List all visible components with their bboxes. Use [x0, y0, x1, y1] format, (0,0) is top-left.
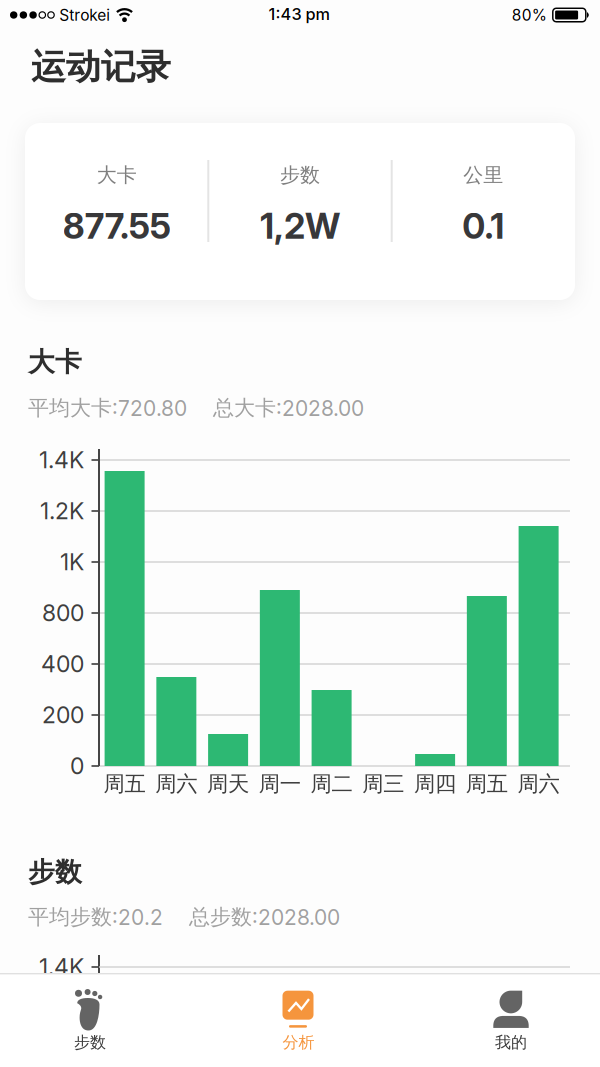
- staticText: 1,2W: [260, 205, 340, 247]
- staticText: 800: [42, 599, 84, 627]
- button[interactable]: 步数: [5, 975, 175, 1067]
- staticText: Strokei: [59, 6, 110, 24]
- staticText: 周四: [414, 771, 456, 797]
- staticText: 周五: [104, 771, 146, 797]
- staticText: 分析: [283, 1033, 315, 1052]
- staticText: 我的: [495, 1033, 527, 1052]
- staticText: 步数: [74, 1033, 106, 1052]
- staticText: 周天: [207, 771, 249, 797]
- staticText: 步数: [280, 163, 320, 187]
- staticText: 400: [41, 650, 84, 678]
- staticText: 1K: [60, 548, 84, 576]
- staticText: 平均步数:20.2: [28, 904, 163, 930]
- staticText: 大卡: [97, 163, 137, 187]
- staticText: 大卡: [28, 346, 82, 378]
- staticText: 总大卡:2028.00: [213, 395, 364, 421]
- staticText: 0.1: [462, 205, 504, 247]
- button[interactable]: 我的: [426, 975, 596, 1067]
- staticText: 周六: [518, 771, 560, 797]
- button[interactable]: 分析: [214, 975, 384, 1067]
- staticText: 200: [42, 701, 84, 729]
- staticText: 1.4K: [39, 953, 84, 981]
- staticText: 1:43 pm: [268, 4, 329, 24]
- staticText: 周五: [466, 771, 508, 797]
- staticText: 0: [70, 752, 84, 780]
- staticText: 1.2K: [40, 497, 84, 525]
- staticText: 877.55: [63, 205, 171, 247]
- staticText: 周一: [259, 771, 301, 797]
- staticText: 公里: [463, 163, 503, 187]
- staticText: 80%: [512, 6, 547, 24]
- staticText: 周六: [155, 771, 197, 797]
- staticText: 平均大卡:720.80: [28, 395, 187, 421]
- staticText: 周二: [311, 771, 353, 797]
- staticText: 周三: [362, 771, 404, 797]
- staticText: 总步数:2028.00: [189, 904, 340, 930]
- staticText: 运动记录: [31, 46, 171, 88]
- staticText: 步数: [28, 856, 82, 888]
- staticText: 1.4K: [39, 446, 84, 474]
